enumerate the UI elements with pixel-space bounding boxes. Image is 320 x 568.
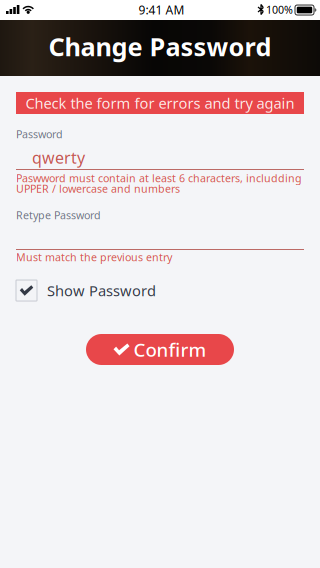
button[interactable]: Show Password: [16, 280, 156, 301]
button[interactable]: Password: [16, 127, 304, 170]
staticText: Paswword must contain at least 6 charact…: [16, 171, 302, 185]
staticText: Password: [16, 127, 63, 141]
staticText: Check the form for errors and try again: [25, 93, 294, 113]
staticText: 100%: [266, 2, 293, 17]
staticText: qwerty: [32, 147, 85, 168]
button[interactable]: Retype Password: [16, 208, 304, 250]
button[interactable]: Confirm: [86, 334, 234, 365]
staticText: Must match the previous entry: [16, 250, 172, 264]
staticText: 9:41 AM: [138, 2, 184, 18]
staticText: Show Password: [47, 281, 156, 300]
staticText: Change Password: [48, 30, 271, 63]
staticText: Retype Password: [16, 208, 101, 222]
staticText: UPPER / lowercase and numbers: [16, 181, 180, 196]
staticText: Confirm: [133, 337, 206, 362]
